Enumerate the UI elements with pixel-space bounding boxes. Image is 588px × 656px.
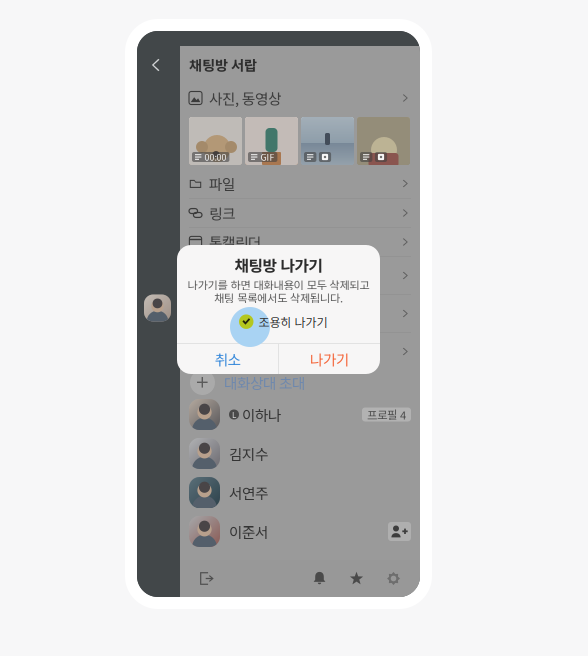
staticText: 나가기를 하면 대화내용이 모두 삭제되고: [187, 276, 369, 293]
staticText: 이준서: [229, 521, 268, 542]
button[interactable]: 서연주: [180, 473, 420, 512]
button[interactable]: 나가기: [279, 344, 380, 374]
button[interactable]: 이준서: [180, 512, 420, 551]
button[interactable]: 사진, 동영상: [180, 83, 420, 113]
staticText: 사진, 동영상: [209, 87, 281, 109]
staticText: 링크: [209, 202, 235, 224]
button[interactable]: L: [180, 395, 420, 434]
button[interactable]: 김지수: [180, 434, 420, 473]
staticText: 파일: [209, 173, 235, 194]
button[interactable]: 파일: [180, 169, 420, 198]
staticText: 채팅방 나가기: [234, 254, 322, 276]
staticText: 공지: [209, 265, 235, 286]
staticText: 취소: [214, 348, 240, 370]
staticText: 나가기: [310, 348, 349, 370]
staticText: 김지수: [229, 443, 268, 464]
staticText: 투표: [209, 303, 235, 324]
staticText: 프로필 4: [367, 406, 406, 423]
staticText: 00:00: [204, 151, 226, 163]
staticText: 톡캘린더: [209, 231, 261, 253]
staticText: 이하나: [242, 404, 281, 425]
button[interactable]: 투표: [180, 295, 420, 332]
staticText: 일정: [209, 341, 235, 362]
button[interactable]: 조용히 나가기: [177, 245, 380, 374]
button[interactable]: 일정: [180, 333, 420, 370]
button[interactable]: 대화상대 초대: [180, 370, 420, 395]
button[interactable]: 톡캘린더: [180, 228, 420, 256]
button[interactable]: 설정: [375, 560, 412, 597]
staticText: 조용히 나가기: [258, 313, 327, 330]
button[interactable]: 뒤로: [141, 51, 169, 79]
button[interactable]: 나가기: [186, 560, 228, 597]
staticText: 채팅방 서랍: [189, 54, 257, 75]
staticText: 채팅 목록에서도 삭제됩니다.: [214, 289, 343, 306]
staticText: GIF: [260, 151, 274, 163]
button[interactable]: 공지: [180, 257, 420, 294]
staticText: 서연주: [229, 482, 268, 503]
button[interactable]: 링크: [180, 199, 420, 227]
button[interactable]: 즐겨찾기: [338, 560, 375, 597]
staticText: 대화상대 초대: [224, 372, 305, 393]
button[interactable]: 취소: [177, 344, 278, 374]
button[interactable]: 알림: [301, 560, 338, 597]
staticText: L: [232, 409, 236, 420]
